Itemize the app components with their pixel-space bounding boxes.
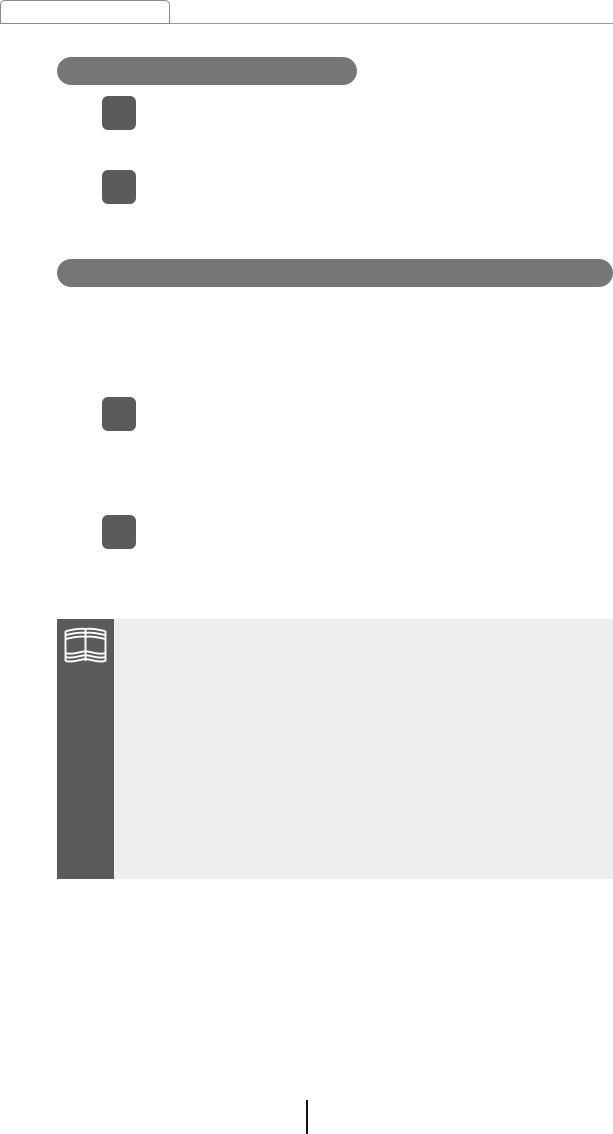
button[interactable]: Section 2 item 1 (102, 397, 136, 431)
button[interactable]: Section 1 item 2 (102, 170, 136, 204)
button[interactable]: Section 2 item 2 (102, 515, 136, 549)
button[interactable]: Section 1 item 1 (102, 96, 136, 130)
button[interactable]: Document tab (0, 0, 170, 23)
